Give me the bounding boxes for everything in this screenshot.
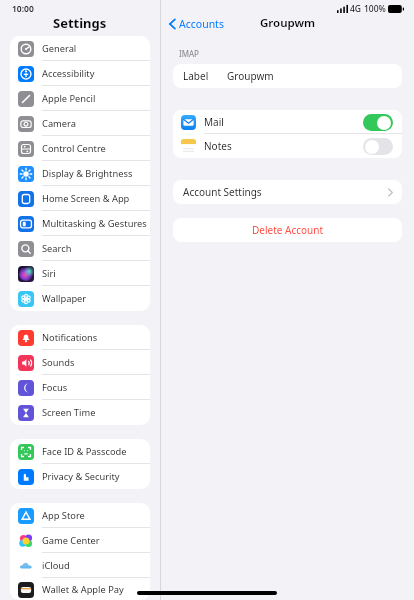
staticText: Face ID & Passcode [42,445,127,458]
button[interactable]: Multitasking & Gestures [10,211,150,236]
staticText: Home Screen & App Library [42,192,150,205]
staticText: Accounts [179,17,224,31]
staticText: Screen Time [42,406,96,419]
button[interactable]: Game Center [10,528,150,553]
button[interactable]: Account Settings [173,180,402,204]
button[interactable]: Mail [173,110,402,134]
button[interactable]: iCloud [10,553,150,578]
button[interactable]: Sounds [10,350,150,375]
button[interactable]: Face ID & Passcode [10,439,150,464]
button[interactable]: Label [173,64,402,88]
staticText: Display & Brightness [42,167,133,180]
staticText: Wallet & Apple Pay [42,583,124,596]
button[interactable]: Wallet & Apple Pay [10,578,150,600]
staticText: General [42,42,77,55]
button[interactable]: Display & Brightness [10,161,150,186]
staticText: Groupwm [260,15,316,31]
staticText: Focus [42,381,68,394]
button[interactable]: Siri [10,261,150,286]
staticText: Settings [53,14,107,32]
button[interactable]: Notes [173,134,402,158]
staticText: 10:00 [12,3,34,15]
staticText: Account Settings [183,185,262,199]
button[interactable]: Apple Pencil [10,86,150,111]
button[interactable]: App Store [10,503,150,528]
staticText: 4G [350,3,362,15]
button[interactable]: Search [10,236,150,261]
button[interactable]: Camera [10,111,150,136]
staticText: Sounds [42,356,75,369]
button[interactable]: General [10,36,150,61]
button[interactable]: Accessibility [10,61,150,86]
staticText: Accessibility [42,67,95,80]
staticText: Siri [42,267,56,280]
staticText: Game Center [42,534,100,547]
staticText: Notifications [42,331,98,344]
staticText: Multitasking & Gestures [42,217,147,230]
staticText: Control Centre [42,142,106,155]
staticText: Mail [204,115,224,129]
button[interactable]: Home Screen & App Library [10,186,150,211]
button[interactable]: Notes off [363,138,393,155]
staticText: IMAP [179,48,199,59]
staticText: Groupwm [227,69,274,83]
staticText: Privacy & Security [42,470,120,483]
staticText: 100% [364,3,386,15]
button[interactable]: Delete Account [173,218,402,242]
staticText: Label [183,69,209,83]
button[interactable]: Accounts [167,15,226,33]
button[interactable]: Notifications [10,325,150,350]
button[interactable]: Wallpaper [10,286,150,311]
staticText: Notes [204,139,232,153]
staticText: Camera [42,117,76,130]
staticText: Search [42,242,72,255]
staticText: App Store [42,509,85,522]
button[interactable]: Screen Time [10,400,150,425]
button[interactable]: Privacy & Security [10,464,150,489]
staticText: Apple Pencil [42,92,96,105]
button[interactable]: Focus [10,375,150,400]
staticText: iCloud [42,559,70,572]
staticText: Wallpaper [42,292,87,305]
button[interactable]: Control Centre [10,136,150,161]
button[interactable]: Mail on [363,114,393,131]
staticText: Delete Account [252,223,324,237]
